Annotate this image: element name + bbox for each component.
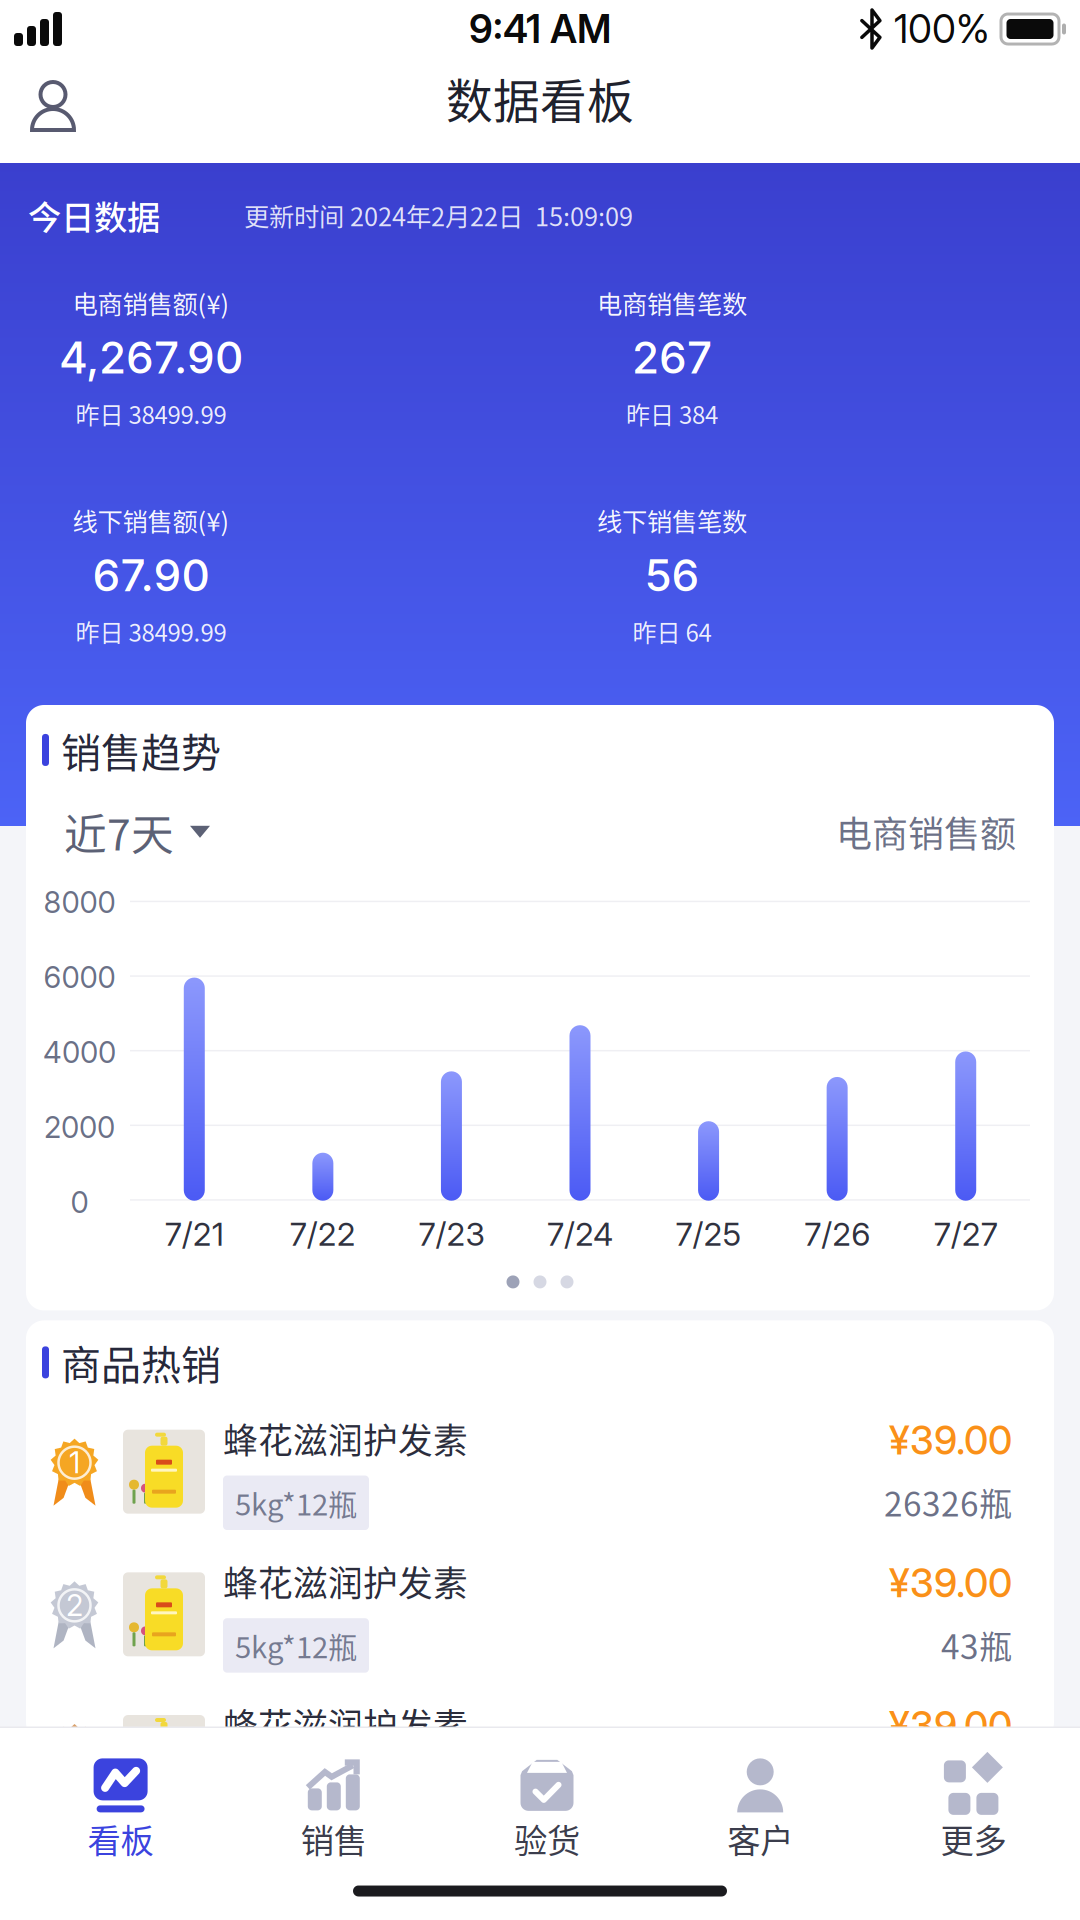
staticText: 12瓶	[941, 1763, 1012, 1812]
staticText: 5kg*12瓶	[235, 1624, 357, 1667]
staticText: 销售	[301, 1814, 367, 1863]
staticText: 6000	[43, 960, 115, 995]
staticText: 43瓶	[941, 1621, 1012, 1669]
staticText: 4000	[43, 1035, 116, 1070]
staticText: 数据看板	[446, 64, 634, 132]
staticText: 电商销售额	[836, 806, 1016, 858]
staticText: 线下销售笔数	[597, 502, 747, 539]
staticText: 5kg*12瓶	[235, 1481, 357, 1524]
staticText: 蜂花滋润护发素	[223, 1556, 468, 1606]
staticText: 昨日 384	[626, 396, 718, 431]
staticText: 4,267.90	[59, 331, 243, 384]
staticText: 看板	[88, 1814, 154, 1863]
staticText: 验货	[514, 1814, 580, 1863]
button[interactable]: 1	[26, 1413, 1054, 1530]
staticText: 今日数据	[28, 191, 160, 239]
staticText: 昨日 38499.99	[75, 614, 226, 649]
staticText: 7/21	[165, 1215, 224, 1253]
staticText: 销售趋势	[61, 721, 221, 779]
staticText: 蜂花滋润护发素	[223, 1413, 468, 1463]
button[interactable]: 销售	[227, 1757, 440, 1863]
button[interactable]: 看板	[14, 1757, 227, 1863]
staticText: ¥39.00	[889, 1560, 1012, 1607]
staticText: 更新时间 2024年2月22日 15:09:09	[244, 197, 633, 233]
staticText: 7/26	[804, 1215, 870, 1253]
staticText: ¥39.00	[889, 1417, 1012, 1464]
button[interactable]: 近7天	[64, 801, 210, 863]
staticText: 8000	[43, 885, 115, 920]
staticText: 客户	[727, 1814, 793, 1863]
staticText: 56	[644, 549, 699, 602]
staticText: 2	[66, 1588, 83, 1623]
staticText: 7/25	[676, 1215, 742, 1253]
staticText: 电商销售额(¥)	[72, 284, 229, 321]
staticText: 2000	[44, 1110, 115, 1145]
staticText: 7/24	[547, 1215, 613, 1253]
button[interactable]: 2	[26, 1556, 1054, 1673]
staticText: 蜂花滋润护发素	[223, 1699, 468, 1749]
staticText: 9:41 AM	[469, 6, 611, 52]
staticText: 0	[70, 1185, 88, 1220]
button[interactable]: Account	[29, 80, 77, 132]
staticText: 67.90	[92, 549, 209, 602]
button[interactable]: 验货	[440, 1757, 654, 1863]
staticText: 昨日 64	[632, 614, 711, 649]
staticText: 7/22	[290, 1215, 356, 1253]
staticText: 近7天	[64, 801, 174, 863]
staticText: 7/23	[418, 1215, 484, 1253]
staticText: 商品热销	[61, 1333, 221, 1391]
staticText: 267	[632, 331, 712, 384]
staticText: 电商销售笔数	[597, 284, 747, 321]
staticText: 100%	[894, 6, 990, 52]
staticText: 1	[69, 1445, 80, 1480]
button[interactable]: 更多	[867, 1757, 1080, 1863]
staticText: 昨日 38499.99	[75, 396, 226, 431]
staticText: 线下销售额(¥)	[72, 502, 229, 539]
button[interactable]: 客户	[654, 1757, 867, 1863]
staticText: 5kg*12瓶	[235, 1767, 357, 1809]
staticText: 更多	[940, 1814, 1006, 1863]
staticText: 26326瓶	[884, 1478, 1012, 1526]
staticText: 7/27	[934, 1215, 998, 1253]
button[interactable]: 3	[26, 1699, 1054, 1815]
staticText: ¥39.00	[889, 1702, 1012, 1749]
